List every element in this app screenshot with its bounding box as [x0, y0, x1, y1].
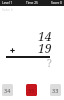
- staticText: Time 25: [26, 1, 38, 5]
- button[interactable]: Score 0: [50, 1, 63, 5]
- staticText: Level 1: [2, 1, 13, 5]
- staticText: 33: [52, 87, 59, 94]
- button[interactable]: Level 1: [1, 1, 14, 5]
- button[interactable]: 34: [2, 84, 13, 96]
- staticText: 34: [4, 87, 11, 94]
- staticText: Solve it: [2, 8, 13, 12]
- staticText: 14: [38, 28, 52, 44]
- staticText: ?: [47, 56, 52, 70]
- staticText: Score 0: [51, 1, 62, 5]
- staticText: 35: [28, 87, 35, 94]
- staticText: 19: [38, 40, 52, 56]
- button[interactable]: 33: [50, 84, 61, 96]
- button[interactable]: 35: [26, 84, 37, 96]
